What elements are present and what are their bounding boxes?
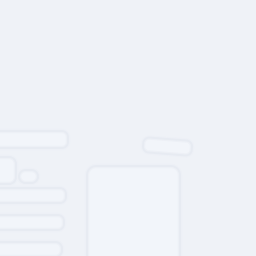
button[interactable]: Status badge [19,170,38,183]
button[interactable]: Feed item 4 [0,242,62,256]
button[interactable]: Feed item 1 [0,131,68,148]
button[interactable]: Tag [143,139,192,154]
button[interactable]: Feed item 2 [0,188,66,203]
button[interactable]: Feed item 3 [0,215,64,230]
button[interactable]: Profile avatar [0,157,16,184]
